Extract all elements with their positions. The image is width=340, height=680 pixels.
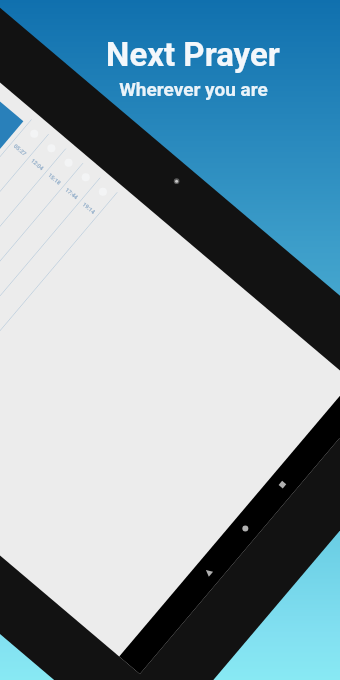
staticText: Next Prayer — [106, 35, 280, 74]
staticText: Wherever you are — [119, 78, 268, 100]
